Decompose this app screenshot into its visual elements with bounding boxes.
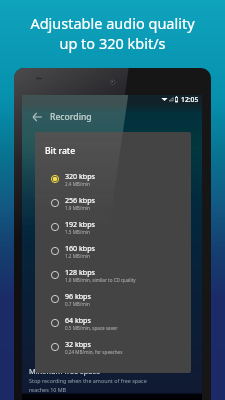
button[interactable]: 192 kbps [35,215,191,239]
staticText: Bit rate [45,145,76,157]
staticText: 12:05 [181,95,199,103]
button[interactable]: Minimum free space [22,366,202,392]
staticText: 2.4 MB/min [65,181,90,187]
staticText: 0.5 MB/min, space saver [65,325,118,331]
staticText: Adjustable audio quality [30,13,195,33]
button[interactable]: 256 kbps [35,191,191,215]
staticText: 192 kbps [65,219,95,229]
staticText: Minimum free space [29,366,101,376]
button[interactable]: 64 kbps [35,311,191,335]
button[interactable]: 32 kbps [35,335,191,359]
staticText: 128 kbps [65,267,95,277]
staticText: Stop recording when the amount of free s… [29,377,147,393]
staticText: 0.24 MB/min, for speeches [65,349,123,355]
staticText: 1.5 MB/min [65,229,90,235]
staticText: 96 kbps [65,291,91,301]
staticText: up to 320 kbit/s [59,33,166,53]
button[interactable]: 96 kbps [35,287,191,311]
staticText: 1.0 MB/min, similar to CD quality [65,277,136,283]
staticText: 32 kbps [65,339,91,349]
button[interactable]: 128 kbps [35,263,191,287]
staticText: 320 kbps [65,171,95,181]
staticText: Recording [50,111,92,123]
button[interactable]: 320 kbps [35,167,191,191]
staticText: 64 kbps [65,315,91,325]
button[interactable]: 160 kbps [35,239,191,263]
staticText: 1.2 MB/min [65,253,90,259]
staticText: 256 kbps [65,195,95,205]
staticText: 160 kbps [65,243,95,253]
button[interactable]: Back [30,110,44,124]
staticText: 0.7 MB/min [65,301,90,307]
staticText: 1.9 MB/min [65,205,90,211]
